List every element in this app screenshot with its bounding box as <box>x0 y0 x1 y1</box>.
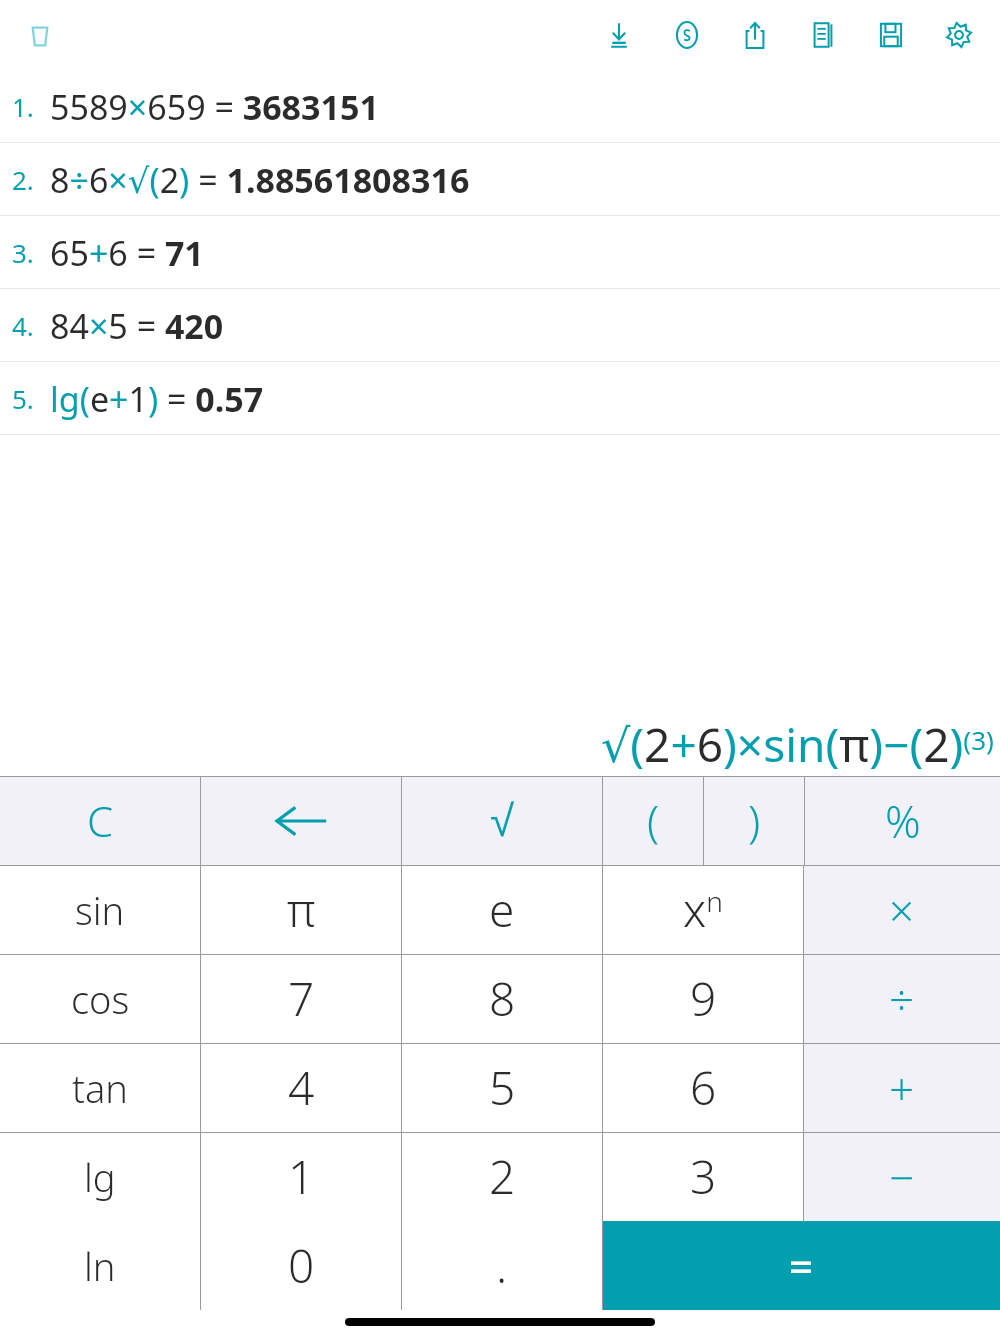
staticText: + <box>889 1058 915 1118</box>
button[interactable]: Share <box>732 12 778 58</box>
button[interactable]: ( <box>603 776 703 865</box>
button[interactable]: π <box>201 865 401 954</box>
staticText: × <box>889 880 915 940</box>
staticText: C <box>87 792 114 849</box>
button[interactable]: Backspace <box>201 776 401 865</box>
button[interactable]: ln <box>0 1221 200 1310</box>
button[interactable]: 8 <box>402 954 602 1043</box>
button[interactable]: xn <box>603 865 803 954</box>
button[interactable]: × <box>804 865 1000 954</box>
button[interactable]: e <box>402 865 602 954</box>
staticText: 84×5 = 420 <box>50 303 224 349</box>
staticText: lg(e+1) = 0.57 <box>50 376 264 422</box>
button[interactable]: . <box>402 1221 602 1310</box>
button[interactable]: 6 <box>603 1043 803 1132</box>
button[interactable]: Import <box>596 12 642 58</box>
button[interactable]: lg <box>0 1132 200 1221</box>
button[interactable]: 2. <box>0 143 1000 216</box>
staticText: √ <box>490 796 515 845</box>
button[interactable]: 4. <box>0 289 1000 362</box>
button[interactable]: 9 <box>603 954 803 1043</box>
button[interactable]: cos <box>0 954 200 1043</box>
staticText: 8 <box>489 967 516 1030</box>
button[interactable]: 7 <box>201 954 401 1043</box>
staticText: 7 <box>288 967 315 1030</box>
button[interactable]: Settings <box>936 12 982 58</box>
staticText: 0 <box>288 1234 315 1297</box>
button[interactable]: √ <box>402 776 602 865</box>
staticText: cos <box>71 973 130 1025</box>
button[interactable]: = <box>603 1221 1000 1310</box>
staticText: 5. <box>12 381 34 416</box>
staticText: tan <box>72 1062 128 1114</box>
staticText: 1. <box>12 89 34 124</box>
button[interactable]: ) <box>704 776 804 865</box>
staticText: e <box>489 878 515 941</box>
staticText: 4. <box>12 308 34 343</box>
staticText: 2. <box>12 162 34 197</box>
staticText: ) <box>748 791 761 851</box>
staticText: 3 <box>690 1145 717 1208</box>
staticText: π <box>287 878 316 941</box>
staticText: 2 <box>489 1145 516 1208</box>
button[interactable]: Delete history <box>14 10 66 62</box>
button[interactable]: 1 <box>201 1132 401 1221</box>
button[interactable]: Scientific mode <box>664 12 710 58</box>
staticText: 4 <box>288 1056 315 1119</box>
button[interactable]: tan <box>0 1043 200 1132</box>
button[interactable]: 5. <box>0 362 1000 435</box>
button[interactable]: 0 <box>201 1221 401 1310</box>
staticText: 9 <box>690 967 717 1030</box>
staticText: lg <box>84 1151 116 1203</box>
button[interactable]: 5 <box>402 1043 602 1132</box>
staticText: √(2+6)×sin(π)−(2)(3) <box>601 713 994 776</box>
staticText: = <box>789 1237 814 1294</box>
button[interactable]: Save <box>868 12 914 58</box>
button[interactable]: − <box>804 1132 1000 1221</box>
staticText: 5 <box>489 1056 516 1119</box>
button[interactable]: + <box>804 1043 1000 1132</box>
staticText: 5589×659 = 3683151 <box>50 84 379 130</box>
staticText: − <box>889 1147 915 1207</box>
button[interactable]: ÷ <box>804 954 1000 1043</box>
staticText: % <box>885 791 921 851</box>
button[interactable]: 1. <box>0 70 1000 143</box>
staticText: ln <box>84 1240 116 1292</box>
button[interactable]: % <box>805 776 1000 865</box>
staticText: 3. <box>12 235 34 270</box>
button[interactable]: 4 <box>201 1043 401 1132</box>
button[interactable]: 3. <box>0 216 1000 289</box>
staticText: 65+6 = 71 <box>50 230 204 276</box>
staticText: ÷ <box>889 969 915 1029</box>
button[interactable]: C <box>0 776 200 865</box>
button[interactable]: Notes <box>800 12 846 58</box>
staticText: 8÷6×√(2) = 1.88561808316 <box>50 157 470 203</box>
staticText: xn <box>683 878 723 941</box>
button[interactable]: sin <box>0 865 200 954</box>
staticText: . <box>496 1234 508 1297</box>
button[interactable]: 2 <box>402 1132 602 1221</box>
staticText: 6 <box>690 1056 717 1119</box>
button[interactable]: 3 <box>603 1132 803 1221</box>
staticText: sin <box>75 884 125 936</box>
staticText: 1 <box>288 1145 315 1208</box>
staticText: ( <box>647 791 660 851</box>
